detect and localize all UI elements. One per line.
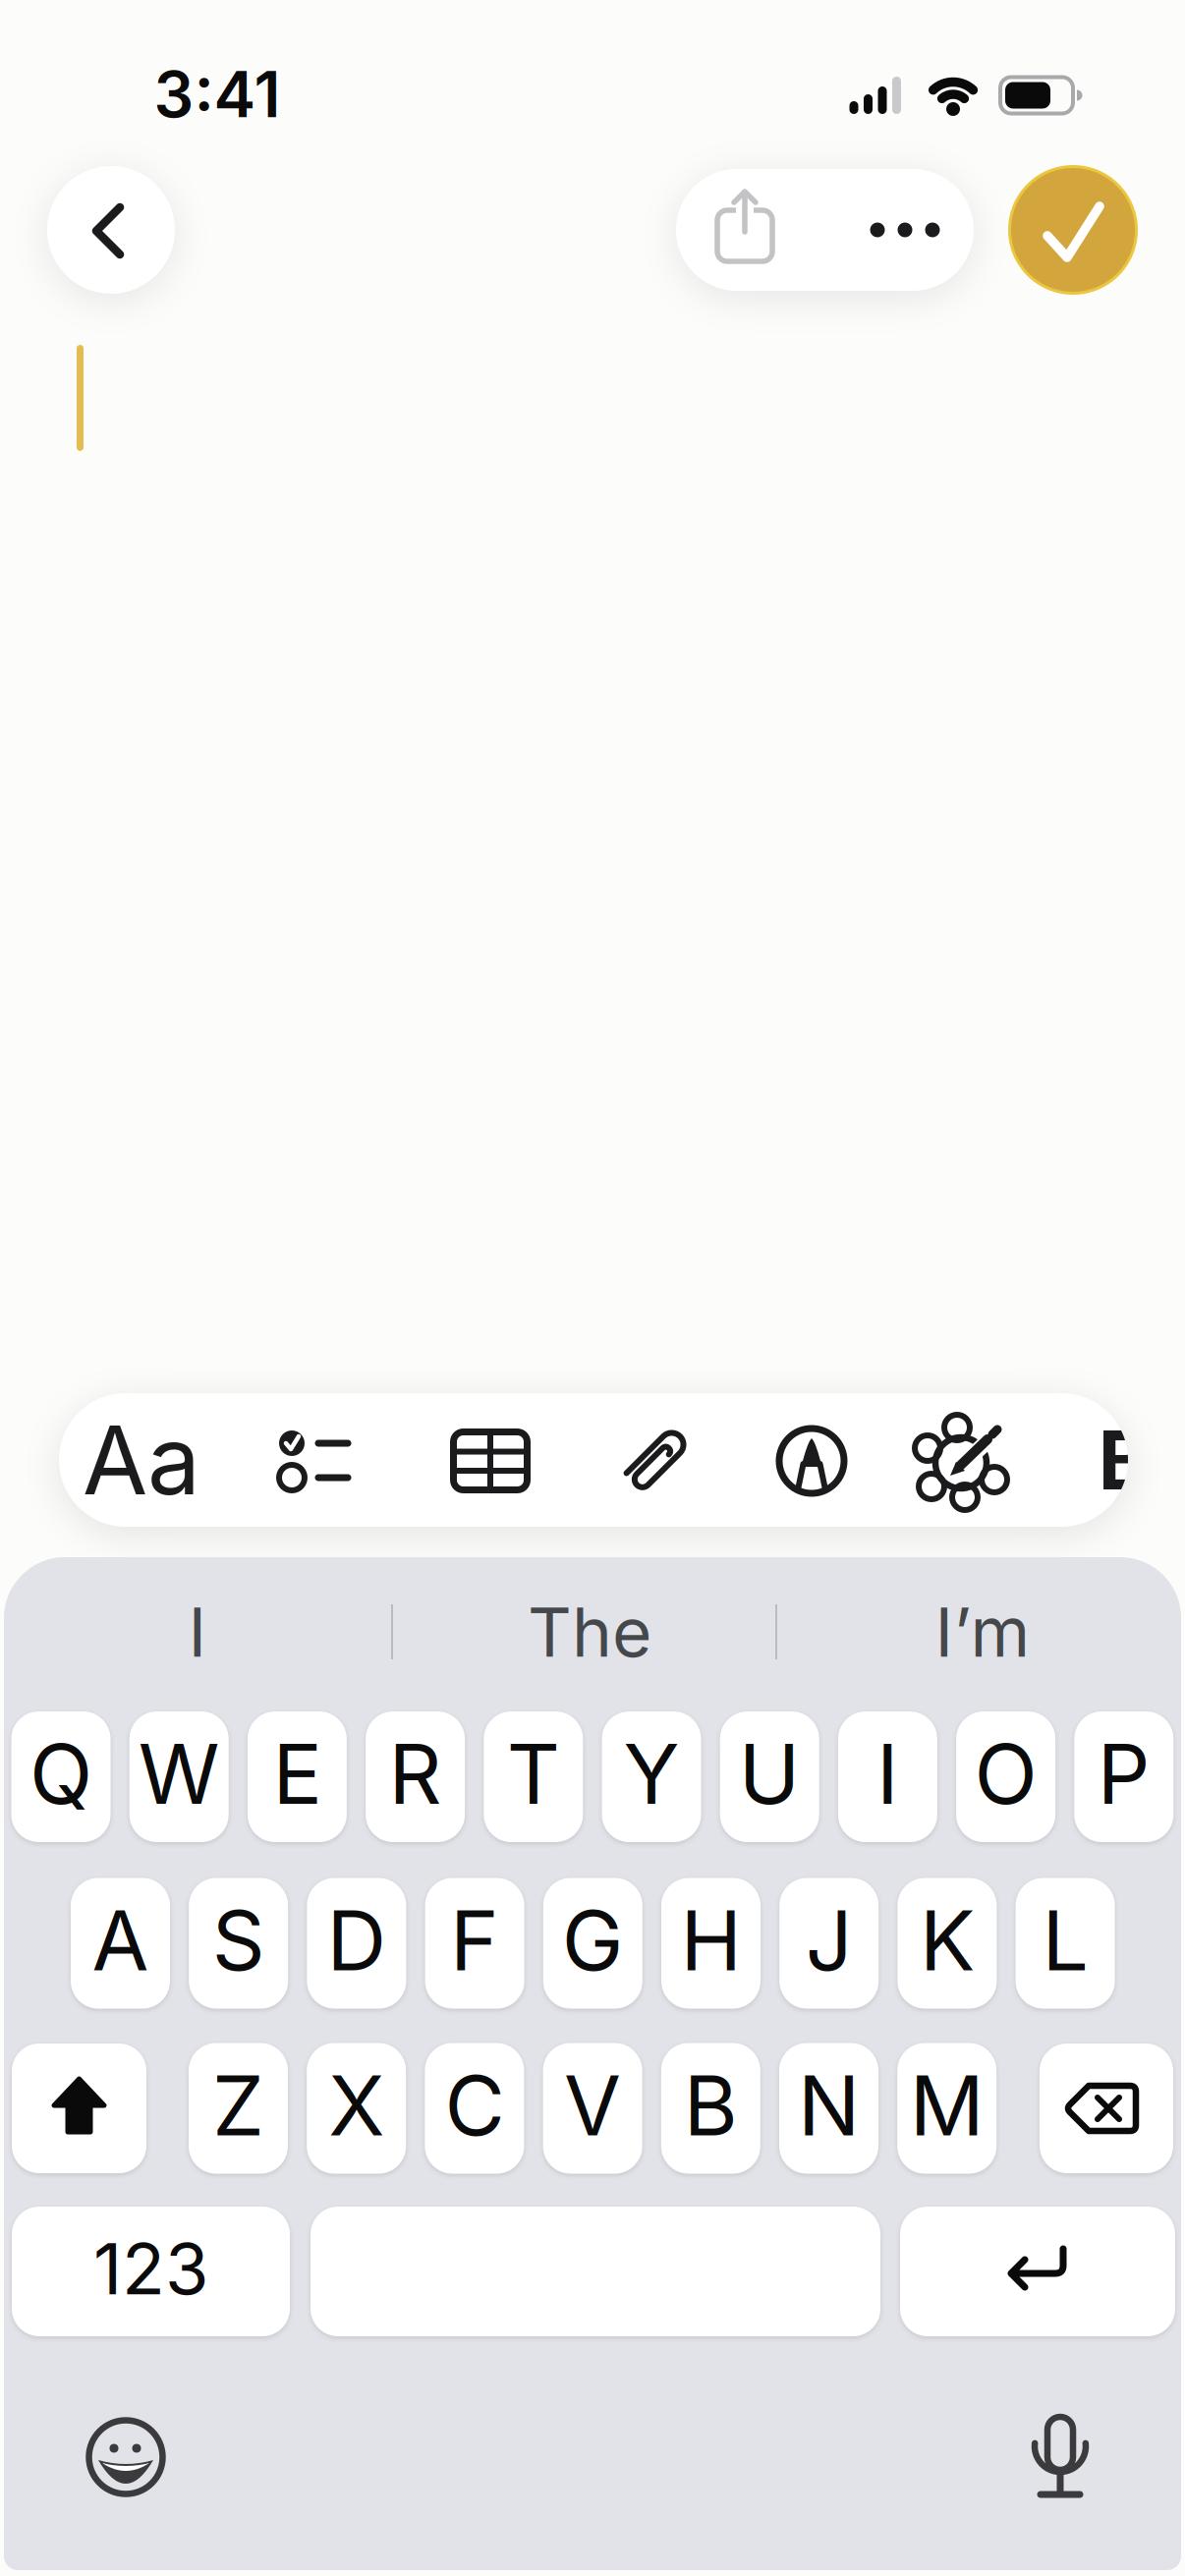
button[interactable]: S [189, 1878, 288, 2009]
staticText: O [974, 1725, 1037, 1823]
staticText: J [805, 1892, 853, 1989]
button[interactable]: L [1016, 1878, 1115, 2009]
staticText: F [450, 1892, 499, 1989]
button[interactable]: J [779, 1878, 879, 2009]
button[interactable]: Format [68, 1393, 215, 1527]
staticText: I [876, 1725, 899, 1823]
button[interactable]: Table [417, 1393, 564, 1527]
staticText: H [680, 1892, 741, 1989]
staticText: Aa [83, 1404, 200, 1516]
button[interactable]: Bold [1081, 1393, 1169, 1527]
staticText: X [328, 2057, 384, 2154]
staticText: N [798, 2057, 860, 2154]
button[interactable]: W [129, 1711, 229, 1842]
button[interactable]: More [836, 169, 974, 291]
button[interactable]: Space [310, 2207, 880, 2336]
button[interactable]: Emoji [72, 2403, 180, 2511]
button[interactable]: E [248, 1711, 347, 1842]
button[interactable]: K [897, 1878, 997, 2009]
button[interactable]: Q [11, 1711, 111, 1842]
staticText: 123 [93, 2227, 208, 2310]
button[interactable]: C [425, 2043, 524, 2174]
button[interactable]: A [71, 1878, 170, 2009]
button[interactable]: Markup [738, 1393, 885, 1527]
button[interactable]: I’m [801, 1583, 1164, 1681]
button[interactable]: I [16, 1583, 379, 1681]
button[interactable]: The [408, 1583, 771, 1681]
staticText: Y [623, 1725, 679, 1823]
button[interactable]: I [838, 1711, 937, 1842]
button[interactable]: X [307, 2043, 406, 2174]
button[interactable]: Checklist [239, 1393, 386, 1527]
staticText: G [562, 1892, 624, 1989]
button[interactable]: Y [602, 1711, 701, 1842]
button[interactable]: Delete [1040, 2044, 1173, 2173]
staticText: P [1097, 1725, 1150, 1823]
staticText: W [138, 1725, 220, 1823]
button[interactable]: Return [900, 2207, 1175, 2336]
staticText: A [92, 1892, 149, 1989]
button[interactable]: 123 [12, 2207, 290, 2336]
staticText: R [389, 1725, 442, 1823]
button[interactable]: P [1074, 1711, 1174, 1842]
staticText: U [739, 1725, 801, 1823]
button[interactable]: Back [47, 166, 175, 294]
staticText: E [273, 1725, 322, 1823]
button[interactable]: Writing Tools [890, 1393, 1038, 1527]
button[interactable]: G [543, 1878, 642, 2009]
button[interactable]: Attach [583, 1393, 730, 1527]
button[interactable]: B [661, 2043, 760, 2174]
staticText: M [910, 2057, 984, 2154]
button[interactable]: M [897, 2043, 997, 2174]
button[interactable]: O [956, 1711, 1055, 1842]
staticText: C [445, 2057, 504, 2154]
staticText: V [564, 2057, 621, 2154]
staticText: S [212, 1892, 265, 1989]
button[interactable]: U [720, 1711, 819, 1842]
staticText: The [528, 1592, 651, 1672]
staticText: Z [212, 2057, 264, 2154]
button[interactable]: Z [189, 2043, 288, 2174]
staticText: B [684, 2057, 738, 2154]
button[interactable]: T [484, 1711, 583, 1842]
staticText: Q [29, 1725, 92, 1823]
button[interactable]: Dictate [1005, 2400, 1113, 2508]
button[interactable]: Done [1008, 165, 1138, 295]
staticText: B [1098, 1412, 1152, 1508]
button[interactable]: R [366, 1711, 465, 1842]
button[interactable]: F [425, 1878, 524, 2009]
button[interactable]: Share [676, 169, 814, 291]
button[interactable]: Shift [12, 2044, 146, 2173]
staticText: T [507, 1725, 560, 1823]
staticText: D [327, 1892, 387, 1989]
staticText: 3:41 [154, 57, 281, 131]
button[interactable]: D [307, 1878, 406, 2009]
staticText: I [188, 1592, 207, 1672]
staticText: L [1042, 1892, 1088, 1989]
staticText: K [920, 1892, 975, 1989]
button[interactable]: N [779, 2043, 878, 2174]
button[interactable]: V [543, 2043, 642, 2174]
button[interactable]: H [661, 1878, 761, 2009]
staticText: I’m [935, 1592, 1030, 1672]
